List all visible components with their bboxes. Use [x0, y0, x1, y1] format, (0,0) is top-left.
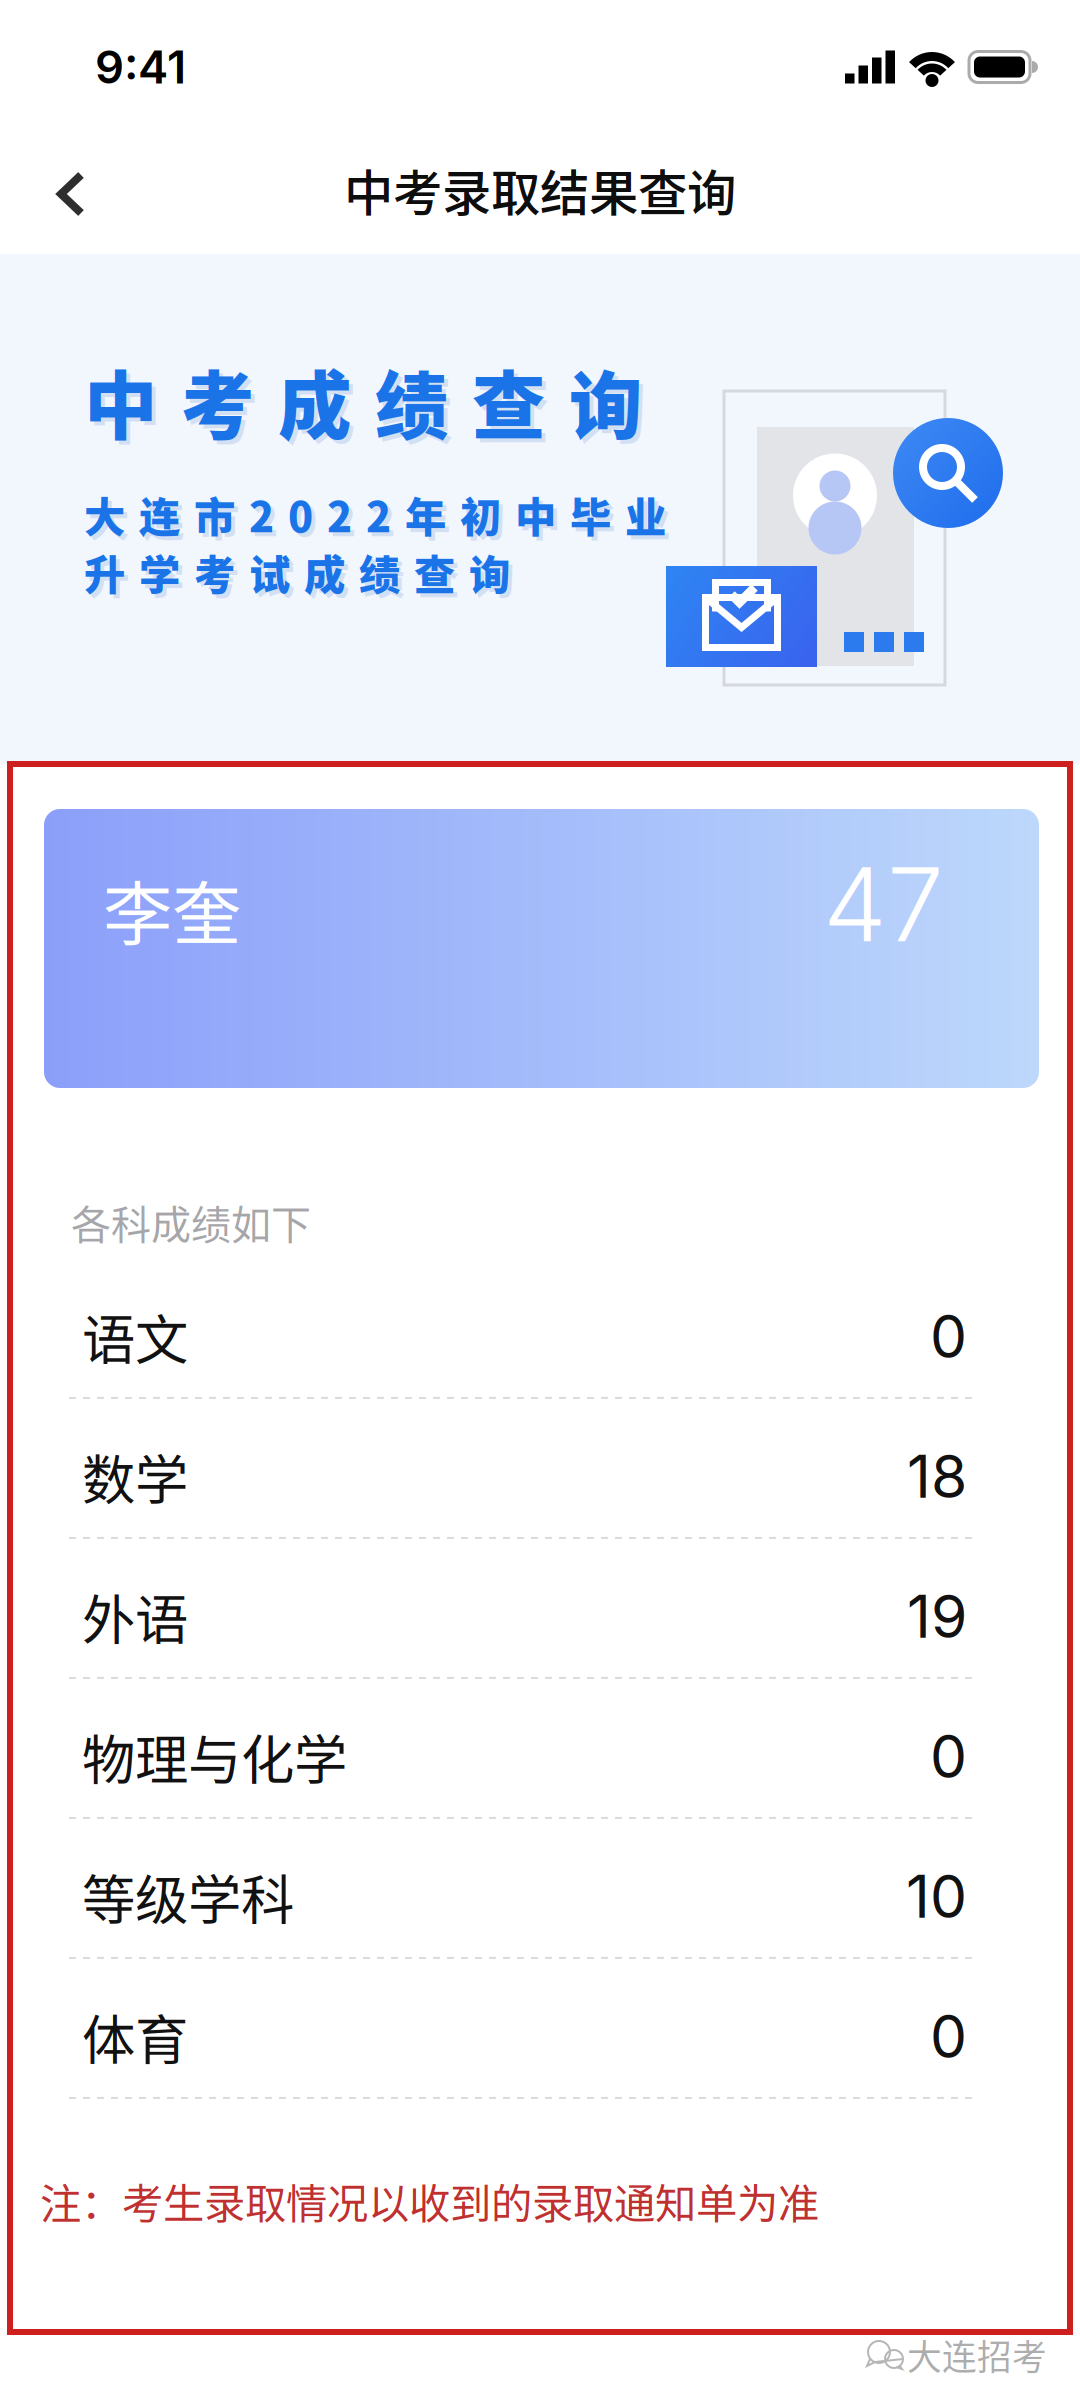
staticText: 0: [930, 1721, 967, 1792]
staticText: 47: [823, 843, 944, 966]
button[interactable]: 数学: [10, 1399, 1070, 1539]
button[interactable]: 等级学科: [10, 1819, 1070, 1959]
staticText: 19: [907, 1581, 967, 1652]
button[interactable]: 物理与化学: [10, 1679, 1070, 1819]
staticText: 大 连 市 2 0 2 2 年 初 中 毕 业: [84, 484, 666, 544]
staticText: 中 考 成 绩 查 询: [84, 348, 642, 454]
staticText: 9:41: [95, 40, 186, 94]
staticText: 大连招考: [907, 2330, 1047, 2380]
staticText: 体育: [82, 1998, 188, 2075]
staticText: 中 考 成 绩 查 询: [88, 352, 646, 458]
button[interactable]: 语文: [10, 1259, 1070, 1399]
button[interactable]: 体育: [10, 1959, 1070, 2099]
button[interactable]: Back: [0, 144, 120, 244]
staticText: 10: [906, 1861, 967, 1932]
staticText: 注：考生录取情况以收到的录取通知单为准: [40, 2171, 819, 2231]
staticText: 各科成绩如下: [71, 1193, 311, 1251]
staticText: 0: [930, 2001, 967, 2072]
staticText: 语文: [82, 1298, 188, 1375]
button[interactable]: 外语: [10, 1539, 1070, 1679]
staticText: 李奎: [103, 859, 241, 959]
staticText: 等级学科: [82, 1858, 294, 1935]
staticText: 物理与化学: [82, 1718, 347, 1795]
staticText: 中考录取结果查询: [344, 154, 736, 225]
staticText: 升 学 考 试 成 绩 查 询: [84, 542, 510, 602]
staticText: 升 学 考 试 成 绩 查 询: [88, 546, 514, 606]
staticText: 外语: [82, 1578, 188, 1655]
staticText: 数学: [82, 1438, 188, 1515]
staticText: 18: [907, 1441, 967, 1512]
staticText: 大 连 市 2 0 2 2 年 初 中 毕 业: [88, 488, 670, 548]
staticText: 0: [930, 1301, 967, 1372]
